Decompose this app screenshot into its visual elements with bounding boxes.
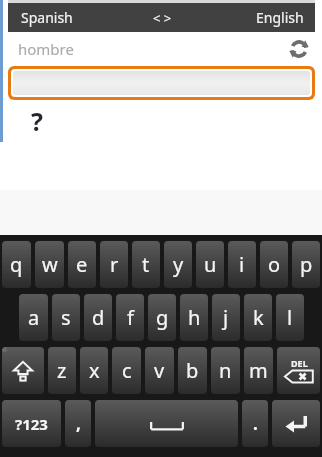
staticText: ?123	[15, 414, 48, 434]
staticText: hombre	[18, 39, 74, 59]
staticText: g	[156, 304, 169, 331]
staticText: f	[127, 304, 134, 331]
staticText: m	[249, 357, 268, 384]
button[interactable]: h	[180, 294, 208, 341]
staticText: Spanish	[21, 8, 73, 27]
button[interactable]: Spanish	[8, 3, 113, 32]
staticText: d	[92, 304, 105, 331]
button[interactable]: Space	[95, 400, 238, 447]
staticText: .	[253, 412, 258, 435]
button[interactable]: x	[80, 347, 108, 394]
staticText: h	[188, 304, 201, 331]
button[interactable]: English	[210, 3, 315, 32]
button[interactable]: u	[196, 241, 224, 288]
staticText: z	[57, 357, 67, 384]
staticText: w	[42, 251, 58, 278]
staticText: a	[28, 304, 40, 331]
staticText: o	[268, 251, 281, 278]
button[interactable]: g	[148, 294, 176, 341]
button[interactable]	[13, 71, 310, 95]
staticText: ?	[31, 104, 43, 138]
staticText: English	[256, 8, 304, 27]
button[interactable]: z	[48, 347, 76, 394]
staticText: r	[110, 251, 119, 278]
button[interactable]: b	[178, 347, 207, 394]
staticText: y	[173, 251, 184, 278]
button[interactable]: c	[112, 347, 141, 394]
staticText: v	[154, 357, 165, 384]
button[interactable]: p	[292, 241, 320, 288]
staticText: c	[122, 357, 132, 384]
staticText: u	[204, 251, 217, 278]
button[interactable]: Refresh	[283, 33, 315, 65]
staticText: e	[76, 251, 88, 278]
staticText: t	[142, 251, 150, 278]
button[interactable]: k	[244, 294, 272, 341]
button[interactable]: q	[2, 241, 31, 288]
button[interactable]: o	[260, 241, 288, 288]
button[interactable]: d	[84, 294, 112, 341]
button[interactable]: a	[19, 294, 48, 341]
button[interactable]: j	[212, 294, 240, 341]
button[interactable]: t	[132, 241, 160, 288]
button[interactable]: n	[211, 347, 240, 394]
button[interactable]: Delete	[277, 347, 320, 394]
button[interactable]: i	[228, 241, 256, 288]
button[interactable]: Enter	[272, 400, 320, 447]
staticText: s	[61, 304, 71, 331]
button[interactable]: e	[68, 241, 96, 288]
staticText: i	[239, 251, 245, 278]
staticText: l	[287, 304, 293, 331]
staticText: x	[89, 357, 100, 384]
button[interactable]: f	[116, 294, 144, 341]
staticText: < >	[153, 9, 172, 27]
button[interactable]: Shift	[2, 347, 44, 394]
button[interactable]: l	[276, 294, 304, 341]
button[interactable]: s	[52, 294, 80, 341]
staticText: j	[223, 304, 229, 331]
button[interactable]: Swap languages	[130, 3, 194, 32]
staticText: q	[10, 251, 23, 278]
button[interactable]: m	[244, 347, 273, 394]
button[interactable]: ?123	[2, 400, 61, 447]
button[interactable]: v	[145, 347, 174, 394]
staticText: n	[219, 357, 232, 384]
button[interactable]: y	[164, 241, 192, 288]
staticText: p	[300, 251, 313, 278]
button[interactable]: .	[242, 400, 268, 447]
button[interactable]: ,	[65, 400, 91, 447]
button[interactable]: r	[100, 241, 128, 288]
staticText: ,	[76, 412, 81, 435]
staticText: k	[253, 304, 264, 331]
staticText: DEL	[291, 357, 308, 369]
staticText: b	[186, 357, 199, 384]
button[interactable]: w	[35, 241, 64, 288]
